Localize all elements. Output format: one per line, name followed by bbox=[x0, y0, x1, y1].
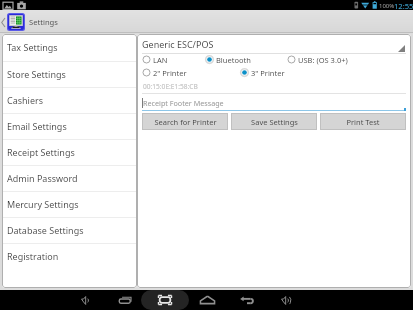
button[interactable]: Back bbox=[233, 290, 261, 310]
staticText: Print Test bbox=[346, 117, 380, 127]
button[interactable]: Up bbox=[0, 10, 80, 33]
button[interactable]: Tax Settings bbox=[2, 35, 137, 61]
staticText: Database Settings bbox=[7, 224, 84, 236]
button[interactable]: Receipt Settings bbox=[2, 140, 137, 165]
button[interactable]: Database Settings bbox=[2, 218, 137, 243]
staticText: Receipt Footer Message bbox=[143, 98, 224, 108]
staticText: Settings bbox=[29, 17, 58, 27]
button[interactable]: Volume down bbox=[71, 290, 99, 310]
button[interactable]: 3" Printer bbox=[240, 66, 288, 79]
staticText: Search for Printer bbox=[154, 117, 217, 127]
staticText: 00:15:0E:E1:58:CB bbox=[143, 82, 198, 91]
button[interactable]: Cashiers bbox=[2, 88, 137, 113]
staticText: Admin Password bbox=[7, 172, 78, 184]
staticText: Tax Settings bbox=[7, 41, 58, 53]
button[interactable]: Save Settings bbox=[231, 113, 317, 130]
button[interactable]: LAN bbox=[142, 53, 178, 66]
staticText: Bluetooth bbox=[216, 55, 251, 65]
button[interactable]: Print Test bbox=[320, 113, 406, 130]
button[interactable]: Recent apps bbox=[112, 290, 140, 310]
button[interactable]: Email Settings bbox=[2, 114, 137, 139]
staticText: Generic ESC/POS bbox=[142, 38, 214, 50]
staticText: Mercury Settings bbox=[7, 198, 79, 210]
button[interactable]: USB: (OS 3.0+) bbox=[287, 53, 357, 66]
staticText: 2" Printer bbox=[153, 68, 187, 78]
staticText: Receipt Settings bbox=[7, 146, 75, 158]
button[interactable]: Generic ESC/POS bbox=[142, 36, 406, 54]
staticText: USB: (OS 3.0+) bbox=[298, 55, 348, 65]
staticText: 12:55 bbox=[394, 1, 413, 11]
button[interactable]: Home bbox=[193, 290, 221, 310]
staticText: 100% bbox=[379, 2, 395, 10]
button[interactable]: Toggle immersive full screen bbox=[141, 290, 189, 310]
button[interactable]: Mercury Settings bbox=[2, 192, 137, 217]
button[interactable]: Volume up bbox=[271, 290, 299, 310]
button[interactable]: Registration bbox=[2, 244, 137, 269]
button[interactable]: 2" Printer bbox=[142, 66, 190, 79]
staticText: 3" Printer bbox=[251, 68, 285, 78]
staticText: Store Settings bbox=[7, 68, 66, 80]
button[interactable]: Receipt Footer Message bbox=[142, 96, 406, 111]
button[interactable]: Admin Password bbox=[2, 166, 137, 191]
button[interactable]: Bluetooth bbox=[205, 53, 257, 66]
staticText: Registration bbox=[7, 250, 59, 262]
button[interactable]: Search for Printer bbox=[142, 113, 228, 130]
staticText: Cashiers bbox=[7, 94, 44, 106]
staticText: Save Settings bbox=[251, 117, 298, 127]
staticText: LAN bbox=[153, 55, 168, 65]
button[interactable]: Store Settings bbox=[2, 62, 137, 87]
staticText: Email Settings bbox=[7, 120, 67, 132]
